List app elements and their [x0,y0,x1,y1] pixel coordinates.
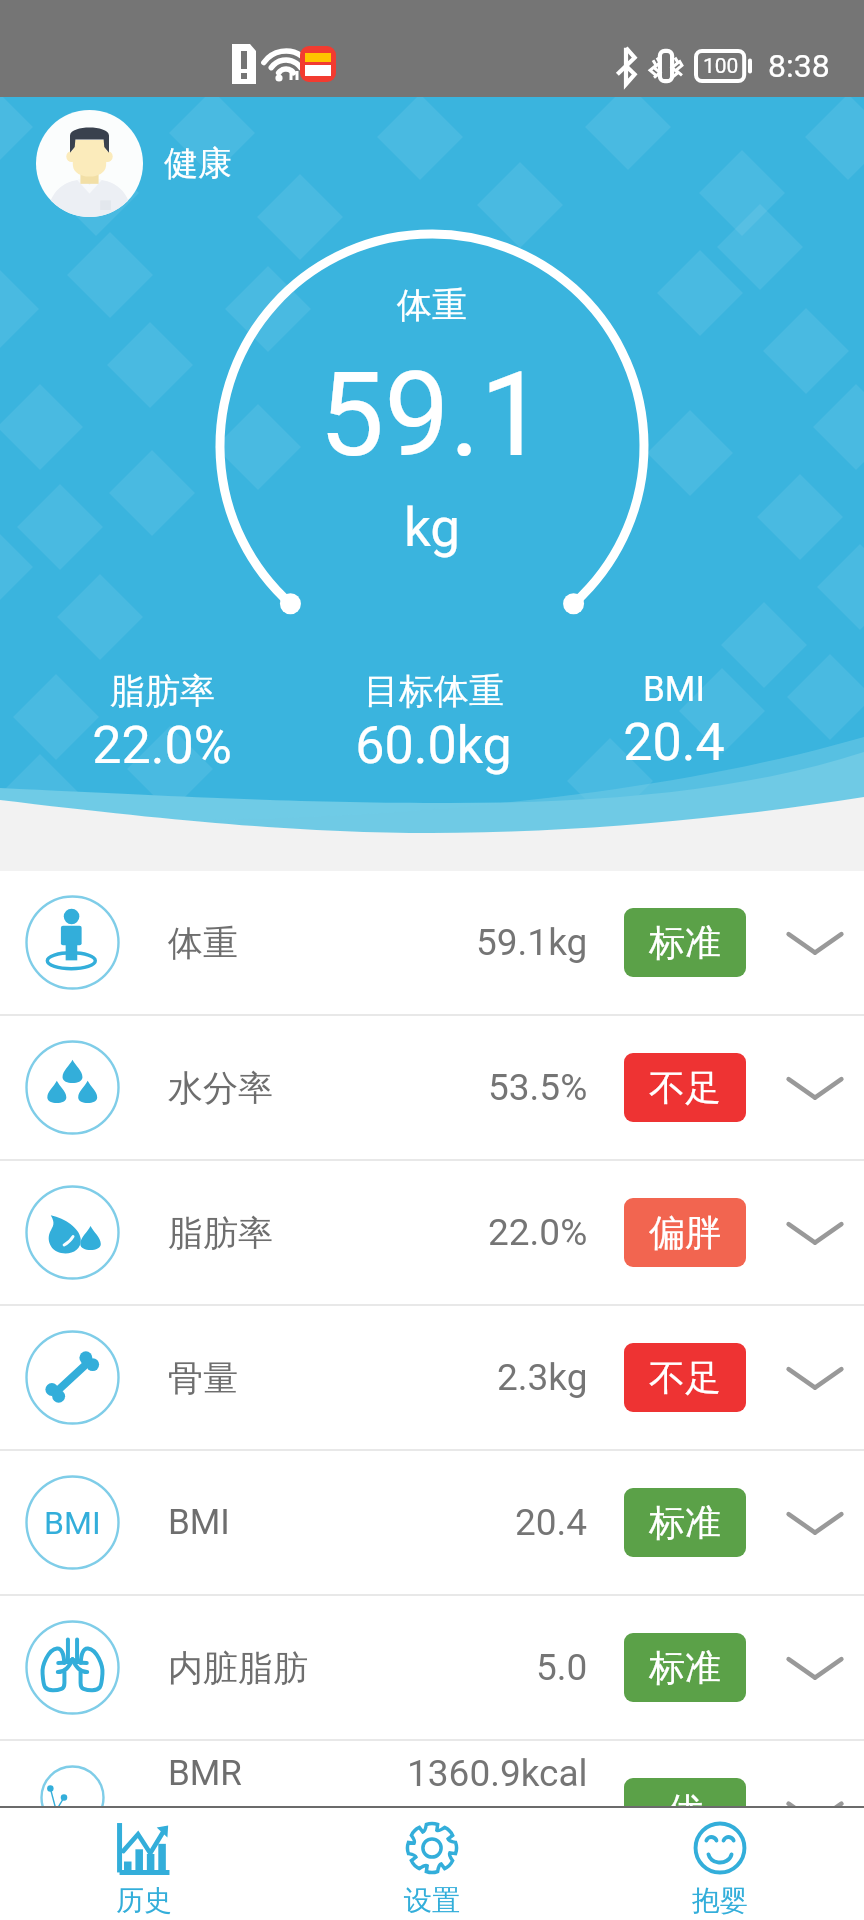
button[interactable]: 不足 [624,1053,746,1122]
button[interactable]: Expand [782,1634,848,1700]
staticText: 22.0% [488,1211,588,1254]
staticText: 健康 [164,142,232,185]
staticText: 设置 [404,1883,460,1918]
staticText: 体重 [397,283,467,327]
staticText: BMI [168,1502,230,1543]
button[interactable]: Expand [782,1054,848,1120]
button[interactable]: BMR [0,1741,864,1806]
button[interactable]: Expand [782,1489,848,1555]
staticText: 100 [703,54,739,79]
staticText: 1360.9kcal [407,1752,588,1795]
button[interactable]: 标准 [624,1633,746,1702]
button[interactable]: 抱婴 [576,1808,864,1920]
staticText: 脂肪率 [110,669,215,713]
button[interactable]: 标准 [624,1488,746,1557]
staticText: 优 [667,1788,703,1806]
button[interactable]: 体重 [0,871,864,1014]
staticText: 标准 [649,920,721,965]
staticText: 体重 [168,921,238,965]
staticText: 22.0% [92,715,232,776]
staticText: 水分率 [168,1066,273,1110]
staticText: 脂肪率 [168,1211,273,1255]
staticText: kg [404,497,461,559]
button[interactable]: 设置 [288,1808,576,1920]
staticText: 不足 [649,1065,721,1110]
button[interactable]: Profile [36,110,143,217]
staticText: 53.5% [488,1066,588,1109]
button[interactable]: BMI [0,1451,864,1594]
staticText: BMI [643,669,705,710]
staticText: 20.4 [515,1501,588,1544]
button[interactable]: 骨量 [0,1306,864,1449]
staticText: 标准 [649,1645,721,1690]
staticText: 8:38 [768,47,830,85]
button[interactable]: Expand [782,1344,848,1410]
button[interactable]: 脂肪率 [0,1161,864,1304]
button[interactable]: 内脏脂肪 [0,1596,864,1739]
button[interactable]: 历史 [0,1808,288,1920]
button[interactable]: 水分率 [0,1016,864,1159]
staticText: 标准 [649,1500,721,1545]
staticText: BMI [44,1504,101,1542]
button[interactable]: 偏胖 [624,1198,746,1267]
staticText: 5.0 [536,1646,588,1689]
staticText: 目标体重 [364,669,504,713]
staticText: 内脏脂肪 [168,1646,308,1690]
staticText: 历史 [116,1883,172,1918]
staticText: BMR [168,1753,242,1794]
staticText: 59.1 [319,347,546,483]
button[interactable]: 优 [624,1778,746,1806]
button[interactable]: 标准 [624,908,746,977]
staticText: 59.1kg [476,921,588,964]
button[interactable]: Expand [782,1779,848,1806]
button[interactable]: Expand [782,1199,848,1265]
staticText: 20.4 [623,712,725,773]
staticText: 2.3kg [497,1356,588,1399]
staticText: 60.0kg [355,715,512,776]
staticText: 抱婴 [692,1883,748,1918]
staticText: 偏胖 [649,1210,721,1255]
button[interactable]: Expand [782,909,848,975]
staticText: 不足 [649,1355,721,1400]
button[interactable]: 不足 [624,1343,746,1412]
staticText: 骨量 [168,1356,238,1400]
